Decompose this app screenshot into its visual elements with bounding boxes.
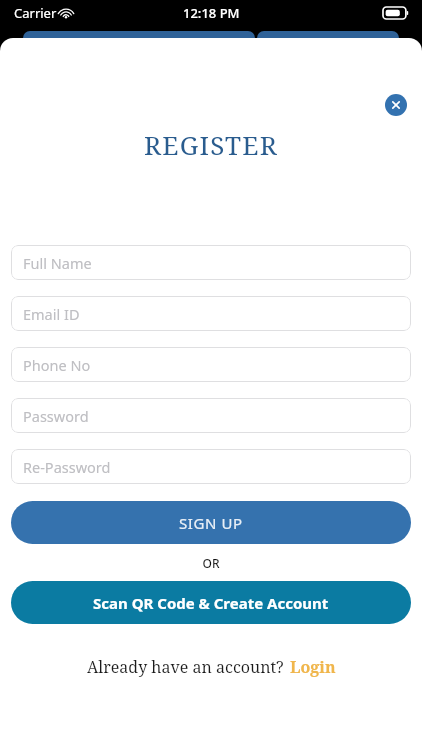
staticText: Full Name: [23, 253, 92, 273]
button[interactable]: Password: [11, 398, 411, 433]
button[interactable]: Email ID: [11, 296, 411, 331]
staticText: Phone No: [23, 355, 91, 375]
button[interactable]: [23, 31, 255, 47]
staticText: 12:18 PM: [183, 4, 240, 22]
button[interactable]: Phone No: [11, 347, 411, 382]
button[interactable]: Scan QR Code & Create Account: [11, 581, 411, 624]
staticText: SIGN UP: [179, 513, 243, 533]
staticText: OR: [11, 555, 411, 571]
staticText: Email ID: [23, 304, 80, 324]
button[interactable]: Close: [385, 94, 407, 116]
button[interactable]: Re-Password: [11, 449, 411, 484]
staticText: Scan QR Code & Create Account: [93, 593, 329, 613]
staticText: Login: [290, 656, 336, 678]
staticText: Carrier: [14, 4, 57, 22]
button[interactable]: Already have an account?: [11, 656, 411, 678]
staticText: Already have an account?: [87, 656, 284, 678]
staticText: Password: [23, 406, 89, 426]
button[interactable]: Full Name: [11, 245, 411, 280]
staticText: Re-Password: [23, 457, 111, 477]
button[interactable]: SIGN UP: [11, 501, 411, 544]
button[interactable]: [257, 31, 399, 47]
staticText: REGISTER: [0, 127, 422, 162]
